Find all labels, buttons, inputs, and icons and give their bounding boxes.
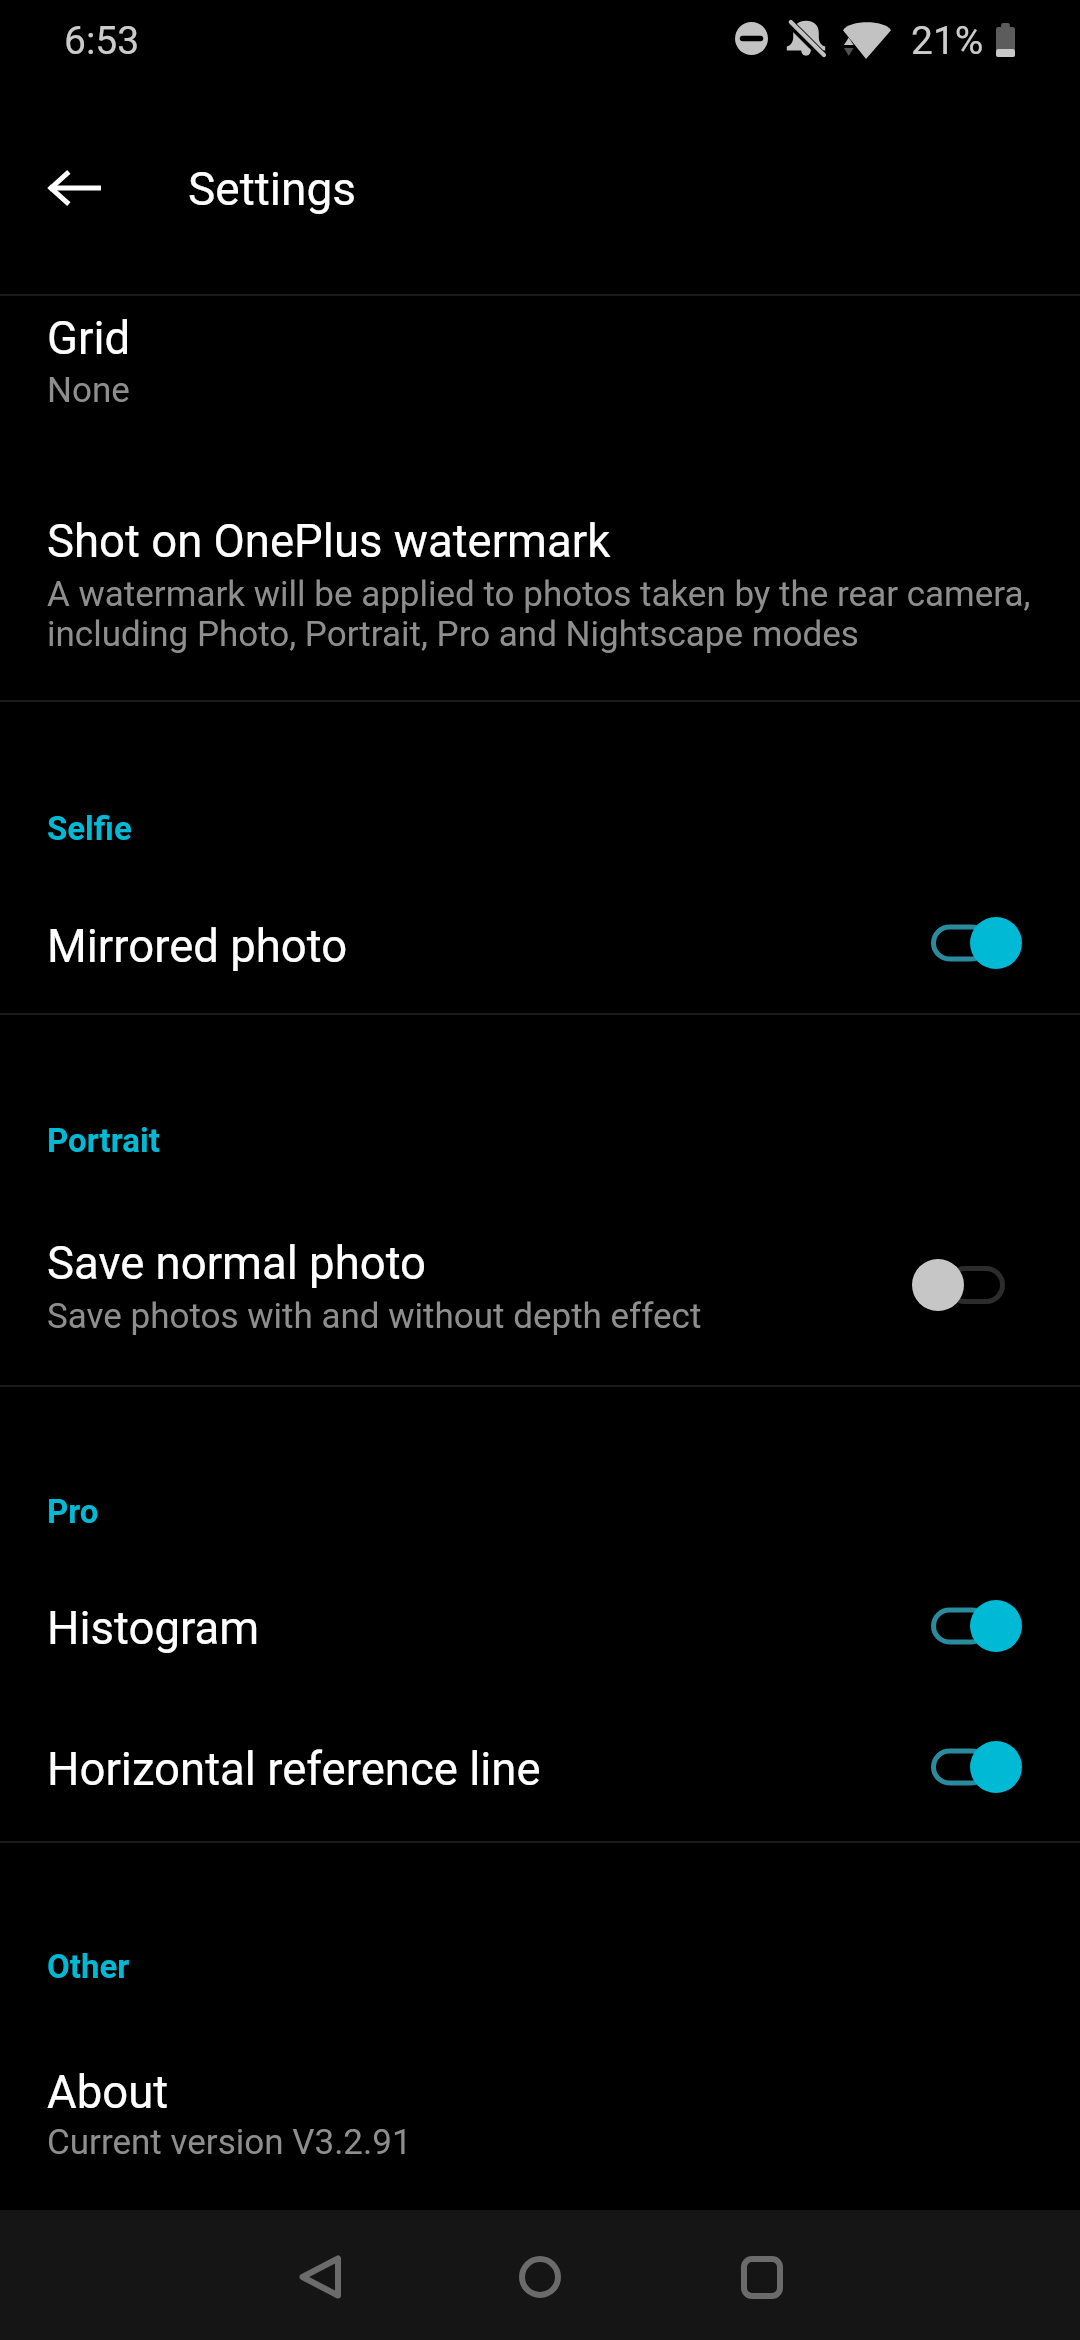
staticText: Mirrored photo: [47, 920, 348, 973]
staticText: Settings: [188, 162, 356, 216]
staticText: Pro: [47, 1492, 99, 1531]
button[interactable]: Horizontal reference line: [0, 1700, 1080, 1837]
staticText: Other: [47, 1947, 130, 1986]
button[interactable]: Back: [10, 124, 138, 252]
button[interactable]: Home: [480, 2217, 600, 2337]
button[interactable]: Mirrored photo: [0, 876, 1080, 1013]
button[interactable]: About: [0, 2020, 1080, 2210]
staticText: 21%: [911, 18, 984, 64]
button[interactable]: Back: [260, 2217, 380, 2337]
staticText: About: [47, 2066, 169, 2119]
staticText: Save photos with and without depth effec…: [47, 1296, 702, 1337]
staticText: Selfie: [47, 809, 132, 848]
button[interactable]: Shot on OnePlus watermark: [0, 500, 1080, 700]
staticText: A watermark will be applied to photos ta…: [47, 574, 1032, 654]
staticText: Portrait: [47, 1121, 160, 1160]
staticText: Grid: [47, 312, 131, 365]
staticText: Histogram: [47, 1602, 260, 1655]
button[interactable]: Grid: [0, 296, 1080, 500]
staticText: 6:53: [64, 18, 140, 64]
staticText: Save normal photo: [47, 1237, 427, 1290]
button[interactable]: Recent apps: [702, 2217, 822, 2337]
staticText: Current version V3.2.91: [47, 2122, 412, 2163]
button[interactable]: Histogram: [0, 1560, 1080, 1697]
button[interactable]: Save normal photo: [0, 1190, 1080, 1385]
staticText: None: [47, 370, 130, 411]
staticText: Shot on OnePlus watermark: [47, 515, 611, 568]
staticText: Horizontal reference line: [47, 1743, 541, 1796]
